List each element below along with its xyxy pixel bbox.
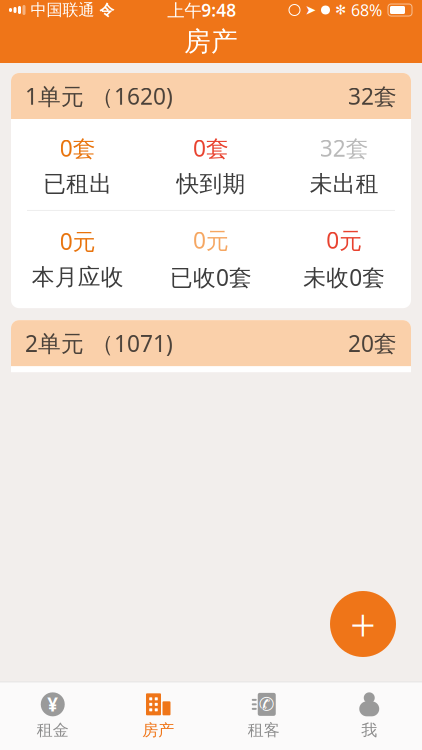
button[interactable]: 2单元 （1071)	[11, 320, 411, 555]
staticText: 0元	[60, 226, 96, 256]
button[interactable]: 1单元 （1620)	[11, 73, 411, 308]
staticText: 0元	[193, 225, 229, 255]
staticText: 未收0套	[303, 262, 385, 292]
staticText: 未出租	[310, 170, 379, 198]
staticText: 房产	[142, 720, 174, 740]
staticText: 租金	[37, 720, 69, 740]
staticText: 0套	[60, 133, 96, 163]
staticText: 令	[99, 1, 114, 19]
staticText: 上午9:48	[167, 0, 236, 21]
staticText: 68%	[351, 0, 382, 21]
staticText: 32套	[320, 133, 369, 163]
staticText: ✻	[335, 2, 346, 17]
button[interactable]: 添加房产	[330, 591, 396, 657]
staticText: ➤	[305, 2, 316, 17]
button[interactable]: ✆	[211, 686, 316, 744]
staticText: 租客	[248, 720, 280, 740]
staticText: 房产	[184, 25, 238, 58]
staticText: 我	[361, 720, 377, 740]
staticText: 快到期	[176, 170, 245, 198]
staticText: +	[350, 594, 376, 654]
staticText: 2单元 （1071)	[25, 328, 173, 358]
button[interactable]: ¥	[0, 686, 105, 744]
staticText: 0元	[326, 225, 362, 255]
staticText: 已租出	[43, 170, 112, 198]
staticText: 1单元 （1620)	[25, 81, 173, 111]
staticText: 本月应收	[32, 263, 124, 291]
staticText: 0套	[193, 133, 229, 163]
button[interactable]: 我	[316, 686, 422, 744]
staticText: ¥	[47, 692, 58, 717]
staticText: 已收0套	[170, 262, 252, 292]
staticText: 32套	[348, 81, 397, 111]
staticText: ✆	[259, 694, 275, 715]
staticText: 中国联通	[30, 0, 94, 20]
staticText: 20套	[348, 328, 397, 358]
button[interactable]: 房产	[105, 686, 211, 744]
